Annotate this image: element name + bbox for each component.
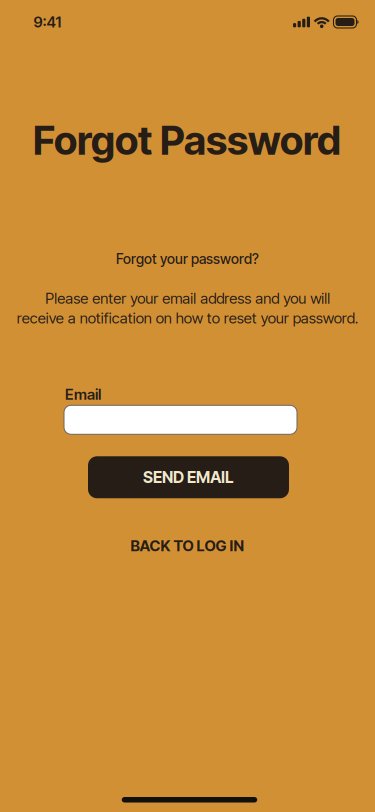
staticText: Please enter your email address and you …: [16, 289, 358, 327]
staticText: 9:41: [33, 13, 61, 31]
staticText: Forgot your password?: [116, 250, 259, 267]
staticText: Email: [65, 385, 101, 403]
staticText: BACK TO LOG IN: [130, 537, 244, 555]
button[interactable]: Email: [64, 405, 297, 434]
button[interactable]: BACK TO LOG IN: [130, 537, 244, 555]
staticText: SEND EMAIL: [143, 468, 234, 487]
button[interactable]: SEND EMAIL: [88, 456, 289, 498]
staticText: Forgot Password: [33, 116, 341, 164]
